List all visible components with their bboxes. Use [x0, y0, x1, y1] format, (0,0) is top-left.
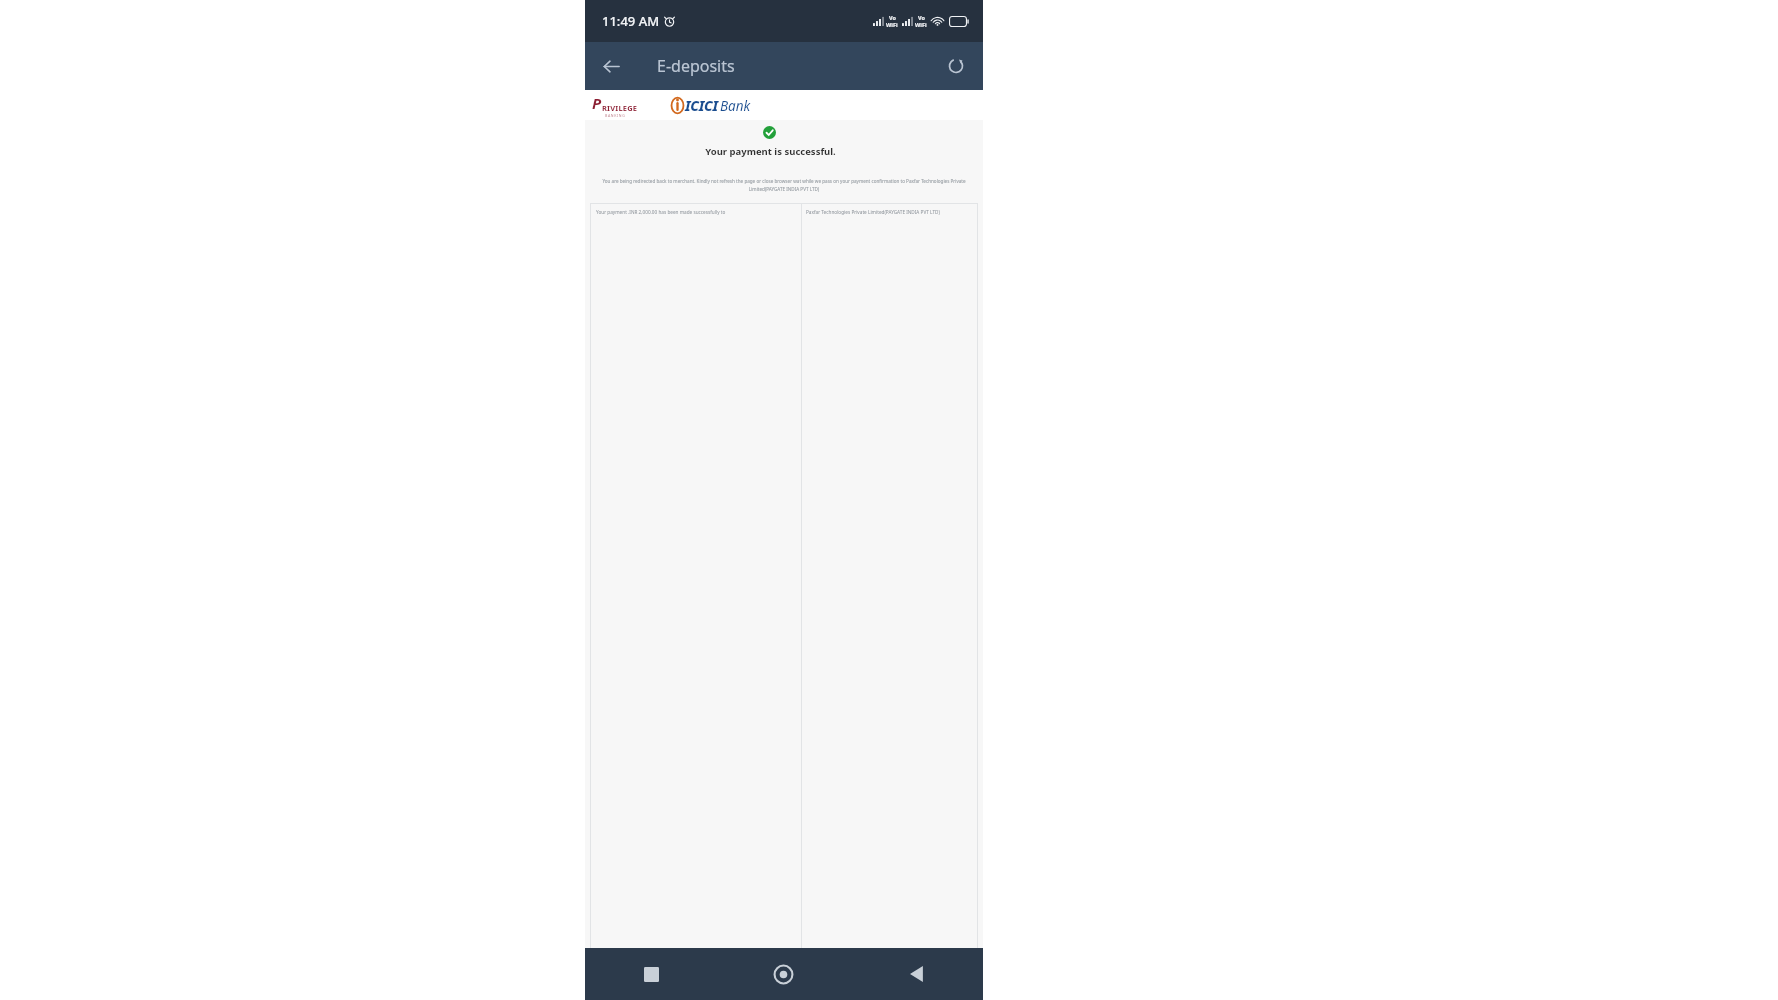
staticText: Bank [720, 97, 751, 115]
staticText: Your payment is successful. [705, 145, 836, 158]
staticText: P [592, 93, 602, 113]
staticText: 11:49 AM [602, 12, 660, 30]
button[interactable]: Recent apps [585, 948, 717, 1000]
button[interactable]: Back [593, 48, 629, 84]
staticText: You are being redirected back to merchan… [589, 178, 979, 192]
staticText: Vo [918, 14, 925, 21]
button[interactable]: Refresh [938, 48, 974, 84]
staticText: Paxfar Technologies Private Limited(PAYG… [806, 209, 940, 215]
staticText: ICICI [685, 96, 718, 115]
button[interactable]: Back [850, 948, 983, 1000]
staticText: Vo [889, 14, 896, 21]
staticText: RIVILEGE [602, 103, 638, 113]
staticText: WiFi [915, 21, 927, 28]
staticText: E-deposits [657, 55, 735, 77]
staticText: Your payment .INR 2,000.00 has been made… [596, 209, 726, 215]
staticText: BANKING [605, 113, 626, 118]
staticText: WiFi [886, 21, 898, 28]
button[interactable]: Home [717, 948, 850, 1000]
